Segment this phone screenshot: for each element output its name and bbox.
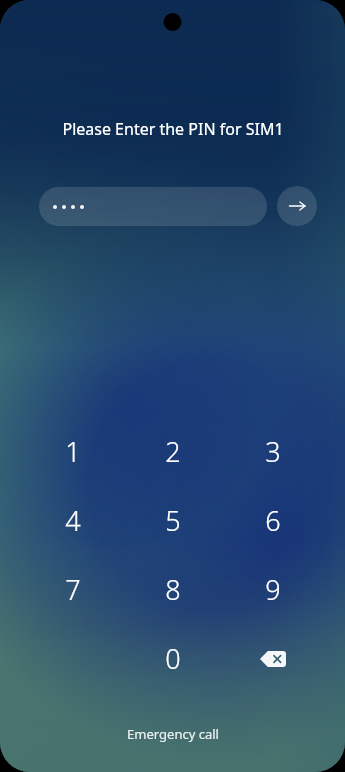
- button[interactable]: Submit PIN: [277, 186, 317, 226]
- staticText: 7: [65, 571, 81, 608]
- staticText: 6: [265, 502, 281, 539]
- staticText: 0: [165, 640, 181, 677]
- button[interactable]: 6: [223, 486, 323, 555]
- button[interactable]: 9: [223, 555, 323, 624]
- button[interactable]: Emergency call: [111, 719, 235, 749]
- staticText: 1: [65, 433, 81, 470]
- staticText: 8: [165, 571, 181, 608]
- staticText: Emergency call: [127, 725, 219, 743]
- staticText: Please Enter the PIN for SIM1: [62, 118, 284, 140]
- staticText: 3: [265, 433, 281, 470]
- button[interactable]: 5: [123, 486, 223, 555]
- staticText: 9: [265, 571, 281, 608]
- staticText: 2: [165, 433, 181, 470]
- staticText: 5: [165, 502, 181, 539]
- button[interactable]: 0: [123, 624, 223, 693]
- button[interactable]: 8: [123, 555, 223, 624]
- button[interactable]: [39, 187, 267, 226]
- button[interactable]: 1: [22, 417, 123, 486]
- button[interactable]: 3: [223, 417, 323, 486]
- staticText: 4: [65, 502, 81, 539]
- button[interactable]: 4: [22, 486, 123, 555]
- button[interactable]: Backspace: [223, 624, 323, 693]
- button[interactable]: 2: [123, 417, 223, 486]
- button[interactable]: 7: [22, 555, 123, 624]
